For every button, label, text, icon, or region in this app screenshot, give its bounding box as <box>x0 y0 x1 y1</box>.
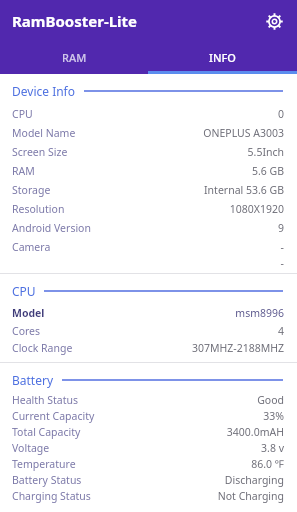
button[interactable]: Camera <box>0 237 297 256</box>
button[interactable]: Storage <box>0 180 297 199</box>
button[interactable]: Android Version <box>0 218 297 237</box>
staticText: CPU <box>12 283 36 299</box>
staticText: Battery Status <box>12 473 82 487</box>
staticText: Model <box>12 306 45 320</box>
button[interactable]: Screen Size <box>0 142 297 161</box>
staticText: 4 <box>277 324 284 338</box>
staticText: Internal 53.6 GB <box>204 183 284 197</box>
button[interactable]: Battery Status <box>0 472 297 488</box>
staticText: 1080X1920 <box>229 202 284 216</box>
staticText: Health Status <box>12 393 79 407</box>
button[interactable]: Cores <box>0 322 297 339</box>
staticText: Current Capacity <box>12 409 95 423</box>
button[interactable]: Clock Range <box>0 339 297 356</box>
staticText: ONEPLUS A3003 <box>203 126 284 140</box>
staticText: Cores <box>12 324 41 338</box>
staticText: Battery <box>12 372 54 388</box>
staticText: 307MHZ-2188MHZ <box>191 341 284 355</box>
staticText: RAM <box>62 50 87 65</box>
button[interactable]: Settings <box>261 8 287 34</box>
button[interactable]: CPU <box>0 104 297 123</box>
staticText: 86.0 ℉ <box>251 457 284 471</box>
staticText: INFO <box>209 50 236 65</box>
staticText: Voltage <box>12 441 50 455</box>
button[interactable]: RAM <box>0 41 148 74</box>
button[interactable]: Resolution <box>0 199 297 218</box>
staticText: Android Version <box>12 221 91 235</box>
staticText: 9 <box>277 221 284 235</box>
staticText: 33% <box>263 409 284 423</box>
button[interactable]: Model <box>0 304 297 322</box>
staticText: Discharging <box>224 473 284 487</box>
staticText: Storage <box>12 183 51 197</box>
button[interactable]: Charging Status <box>0 488 297 504</box>
staticText: 5.6 GB <box>251 164 284 178</box>
button[interactable]: INFO <box>148 41 297 74</box>
button[interactable]: Temperature <box>0 456 297 472</box>
staticText: 3400.0mAH <box>226 425 284 439</box>
button[interactable]: Total Capacity <box>0 424 297 440</box>
staticText: Temperature <box>12 457 76 471</box>
staticText: 0 <box>277 107 284 121</box>
button[interactable]: Current Capacity <box>0 408 297 424</box>
staticText: Charging Status <box>12 489 91 503</box>
staticText: - <box>280 256 284 270</box>
staticText: Screen Size <box>12 145 68 159</box>
staticText: Model Name <box>12 126 76 140</box>
staticText: 5.5Inch <box>247 145 284 159</box>
staticText: Resolution <box>12 202 65 216</box>
staticText: Total Capacity <box>12 425 81 439</box>
button[interactable]: Health Status <box>0 392 297 408</box>
staticText: RAM <box>12 164 35 178</box>
button[interactable]: Voltage <box>0 440 297 456</box>
staticText: Good <box>257 393 284 407</box>
staticText: Device Info <box>12 83 76 99</box>
staticText: Clock Range <box>12 341 73 355</box>
staticText: CPU <box>12 107 33 121</box>
button[interactable]: Model Name <box>0 123 297 142</box>
staticText: RamBooster-Lite <box>12 11 138 31</box>
button[interactable]: RAM <box>0 161 297 180</box>
staticText: - <box>280 240 284 254</box>
staticText: msm8996 <box>235 306 284 320</box>
staticText: 3.8 v <box>261 441 284 455</box>
staticText: Camera <box>12 240 51 254</box>
staticText: Not Charging <box>217 489 284 503</box>
